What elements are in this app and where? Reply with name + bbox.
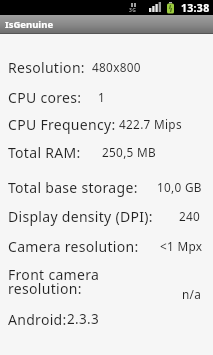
staticText: Total base storage:	[8, 178, 138, 197]
staticText: n/a	[182, 286, 202, 302]
staticText: 3G	[129, 7, 137, 14]
button[interactable]: Camera resolution:	[0, 235, 213, 257]
button[interactable]: Front camera	[0, 262, 213, 304]
staticText: 13:38	[181, 1, 210, 15]
staticText: IsGenuine	[5, 18, 54, 31]
staticText: 10,0 GB	[157, 179, 202, 195]
button[interactable]: Display density (DPI):	[0, 205, 213, 227]
staticText: Total RAM:	[8, 143, 81, 162]
button[interactable]: Total RAM:	[0, 141, 213, 163]
staticText: CPU Frequency:	[8, 115, 116, 134]
staticText: 240	[179, 208, 201, 224]
staticText: Display density (DPI):	[8, 207, 153, 226]
button[interactable]: Resolution:	[0, 56, 213, 78]
staticText: 2.3.3	[67, 310, 99, 328]
staticText: 422.7 Mips	[119, 116, 182, 132]
button[interactable]: CPU cores:	[0, 86, 213, 108]
staticText: Android:	[8, 310, 67, 329]
button[interactable]: CPU Frequency:	[0, 113, 213, 135]
staticText: <1 Mpx	[160, 238, 203, 254]
staticText: 250,5 MB	[102, 144, 156, 160]
staticText: resolution:	[8, 279, 82, 298]
staticText: Camera resolution:	[8, 237, 139, 256]
button[interactable]: Android:	[0, 308, 213, 330]
staticText: Resolution:	[8, 58, 85, 77]
staticText: Front camera	[8, 265, 100, 284]
staticText: 1	[98, 89, 106, 105]
button[interactable]: Total base storage:	[0, 176, 213, 198]
staticText: CPU cores:	[8, 88, 82, 107]
staticText: 480x800	[92, 59, 141, 75]
